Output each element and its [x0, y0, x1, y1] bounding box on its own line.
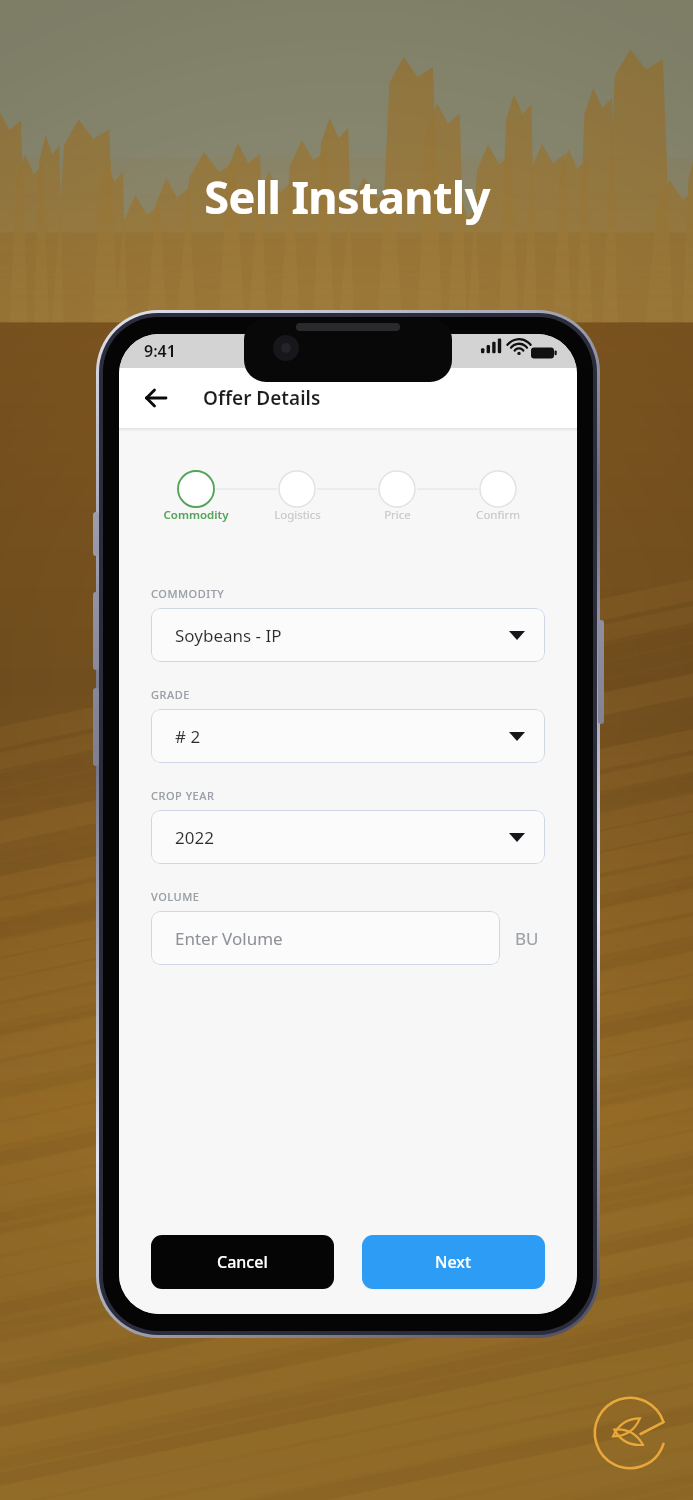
- button[interactable]: Back: [135, 377, 177, 419]
- button[interactable]: Next: [362, 1235, 545, 1289]
- staticText: Next: [435, 1251, 472, 1273]
- button[interactable]: Price: [352, 507, 442, 523]
- staticText: BU: [515, 927, 539, 950]
- staticText: # 2: [175, 725, 509, 748]
- button[interactable]: Commodity: [151, 507, 241, 523]
- staticText: Confirm: [476, 507, 520, 523]
- button[interactable]: 2022: [151, 810, 545, 864]
- button[interactable]: Cancel: [151, 1235, 334, 1289]
- staticText: Cancel: [217, 1251, 268, 1273]
- staticText: Offer Details: [203, 385, 321, 411]
- staticText: Soybeans - IP: [175, 624, 509, 647]
- staticText: CROP YEAR: [151, 788, 215, 803]
- button[interactable]: Brand logo: [590, 1393, 670, 1473]
- staticText: 9:41: [144, 340, 176, 362]
- button[interactable]: Confirm: [453, 507, 543, 523]
- button[interactable]: Logistics: [252, 507, 342, 523]
- staticText: 2022: [175, 826, 509, 849]
- staticText: Enter Volume: [175, 927, 283, 950]
- staticText: COMMODITY: [151, 586, 225, 601]
- button[interactable]: Enter Volume: [151, 911, 500, 965]
- staticText: VOLUME: [151, 889, 200, 904]
- button[interactable]: # 2: [151, 709, 545, 763]
- staticText: GRADE: [151, 687, 190, 702]
- staticText: Sell Instantly: [204, 166, 490, 227]
- button[interactable]: Soybeans - IP: [151, 608, 545, 662]
- staticText: Price: [384, 507, 411, 523]
- staticText: Logistics: [274, 507, 321, 523]
- staticText: Commodity: [163, 507, 229, 523]
